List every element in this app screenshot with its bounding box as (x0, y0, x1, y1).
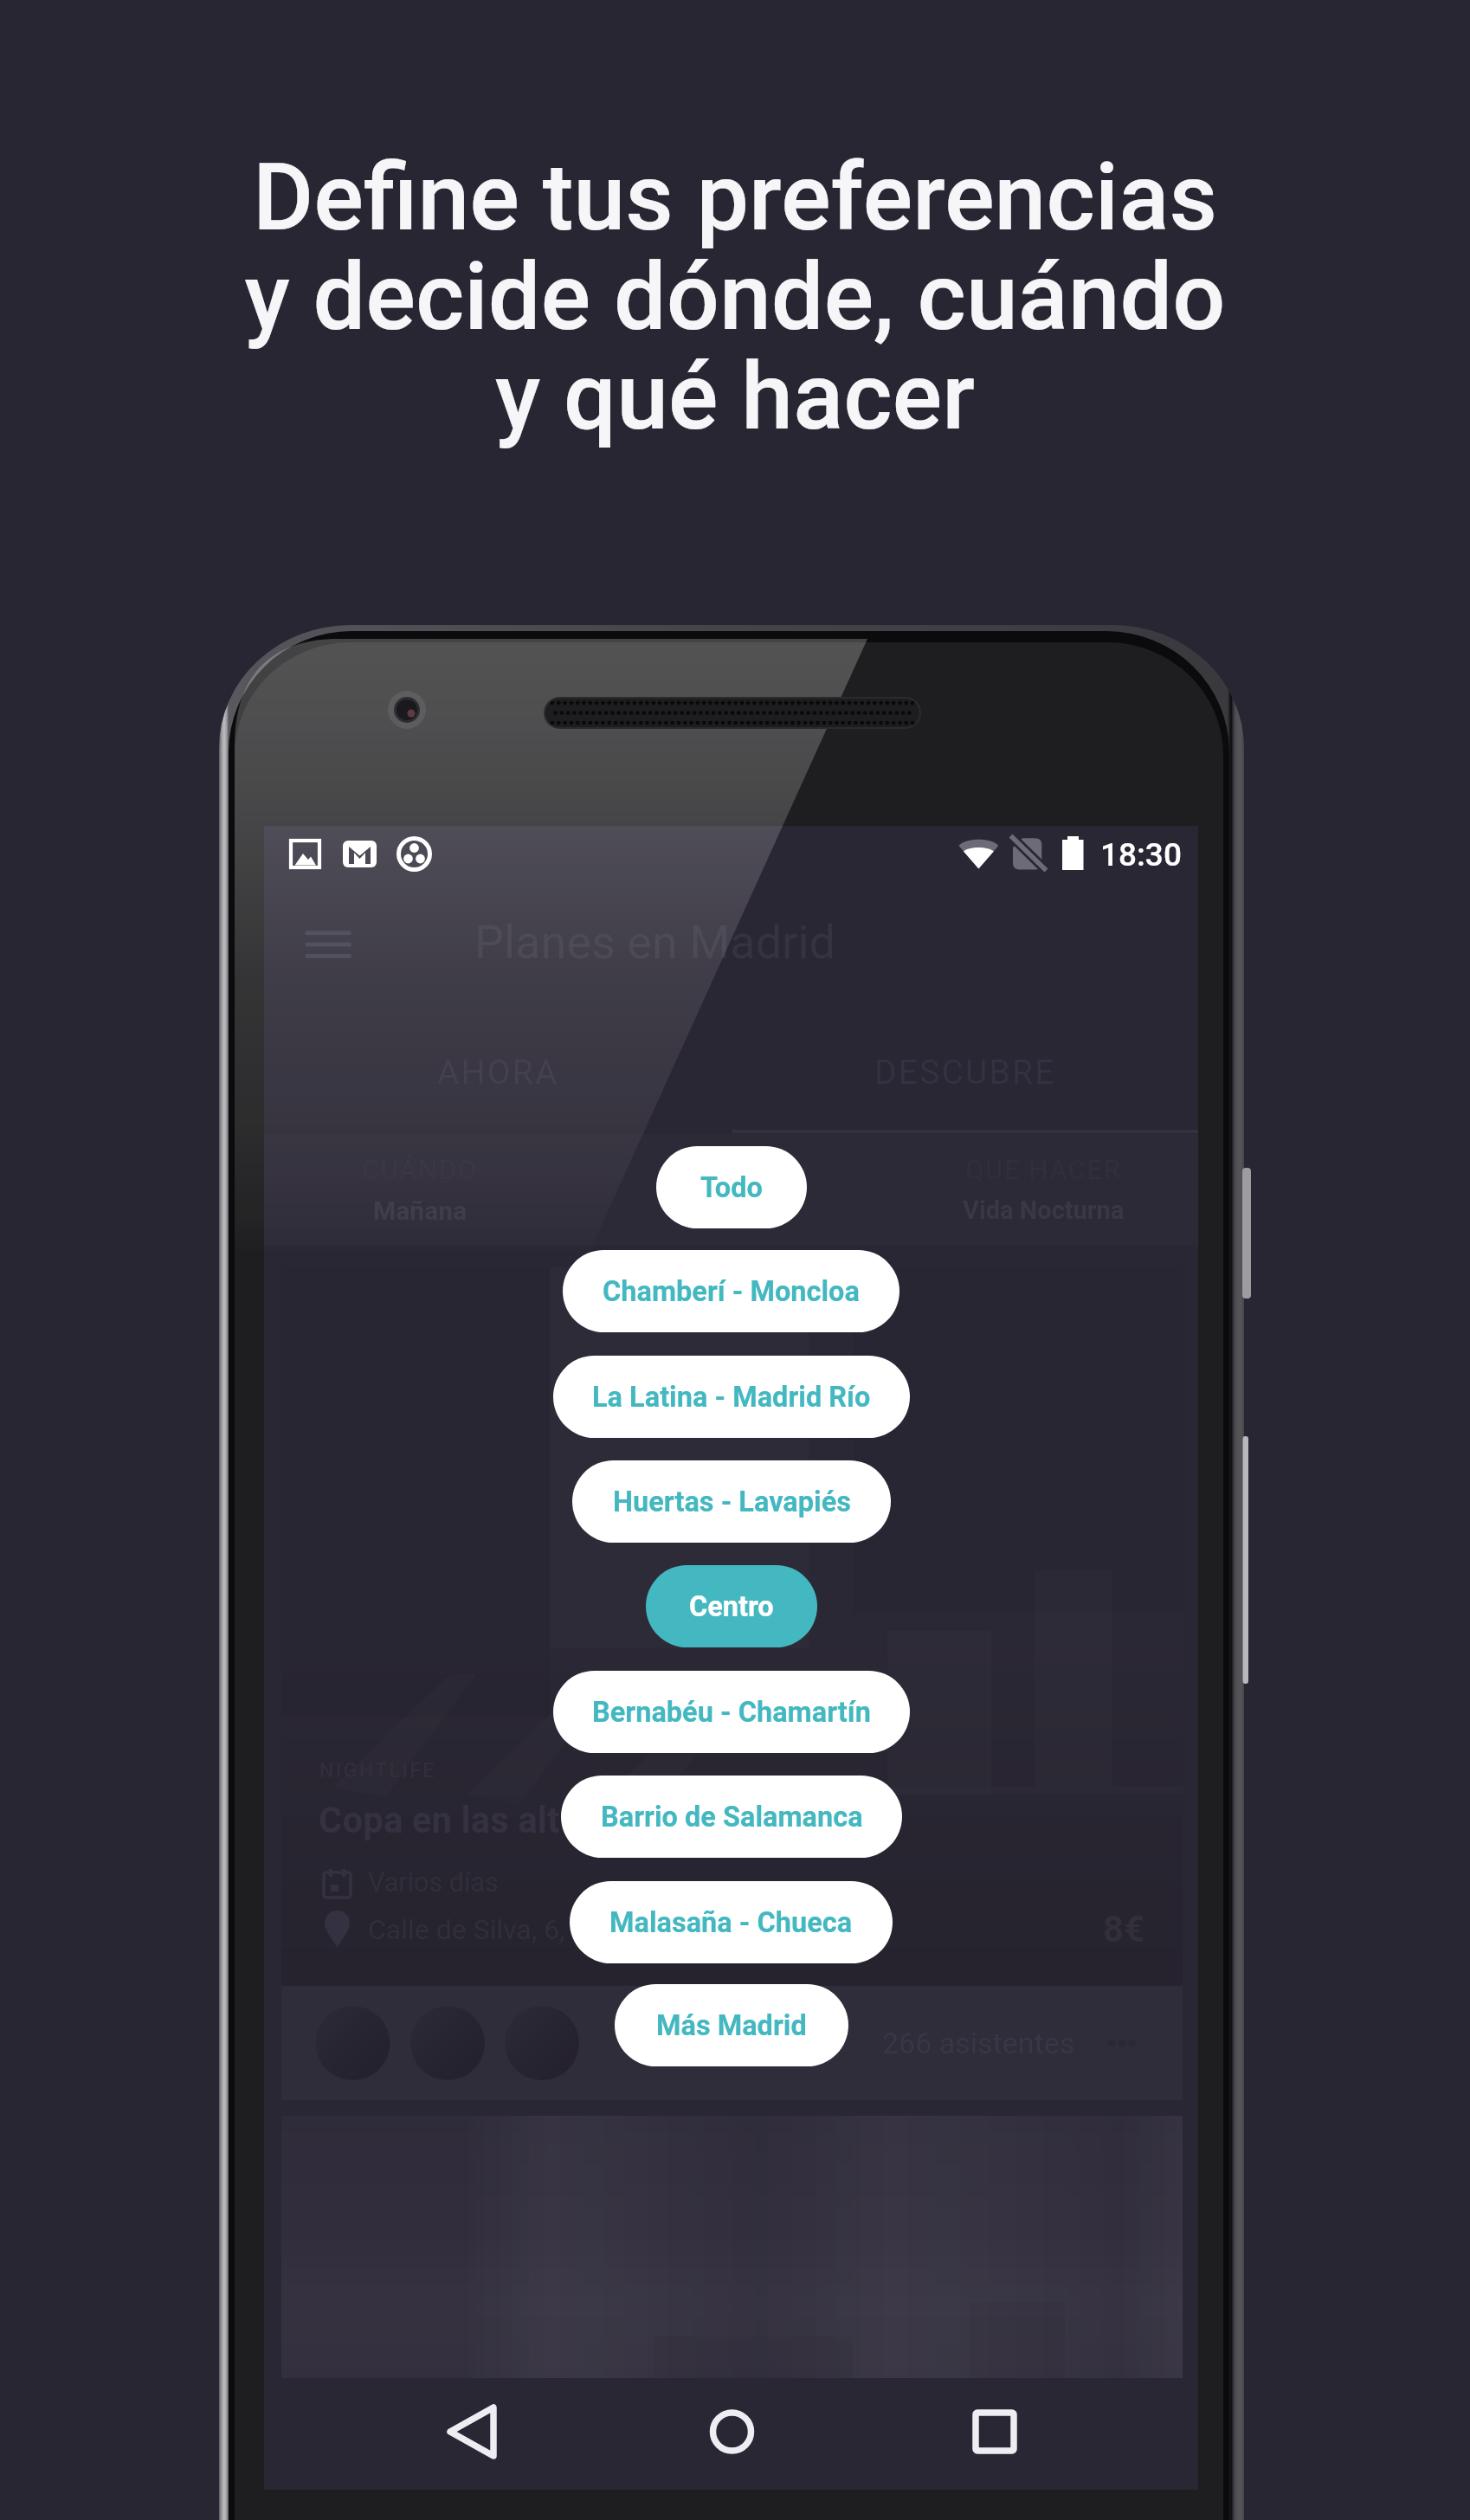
button[interactable]: Huertas - Lavapiés (572, 1460, 891, 1543)
staticText: Barrio de Salamanca (601, 1801, 863, 1834)
staticText: Copa en las alturas (319, 1799, 631, 1841)
button[interactable]: Back (409, 2379, 530, 2490)
staticText: Centro (689, 1590, 774, 1623)
button[interactable]: Centro (646, 1565, 817, 1647)
staticText: Vida Nocturna (963, 1196, 1125, 1225)
staticText: AHORA (437, 1053, 559, 1092)
button[interactable]: Recent apps (934, 2379, 1055, 2490)
staticText: DESCUBRE (874, 1053, 1056, 1092)
staticText: Bernabéu - Chamartín (592, 1696, 871, 1729)
button[interactable] (281, 1986, 1183, 2100)
button[interactable]: AHORA (264, 1012, 732, 1133)
button[interactable]: CUÁNDO (264, 1134, 576, 1245)
staticText: Define tus preferencias y decide dónde, … (0, 143, 1470, 451)
button[interactable]: Barrio de Salamanca (561, 1776, 902, 1858)
staticText: Malasaña - Chueca (609, 1906, 853, 1939)
button[interactable] (281, 1267, 1183, 1986)
staticText: Todo (700, 1171, 763, 1204)
button[interactable]: Malasaña - Chueca (570, 1881, 893, 1963)
staticText: 266 asistentes (882, 2026, 1075, 2060)
button[interactable]: Chamberí - Moncloa (563, 1250, 899, 1332)
staticText: 18:30 (1100, 836, 1182, 873)
staticText: Huertas - Lavapiés (613, 1486, 851, 1518)
button[interactable] (281, 2116, 1183, 2378)
button[interactable]: Más Madrid (615, 1984, 848, 2066)
staticText: Más Madrid (656, 2009, 807, 2042)
button[interactable]: Todo (656, 1146, 807, 1228)
staticText: La Latina - Madrid Río (592, 1381, 871, 1414)
staticText: 8€ (1103, 1908, 1145, 1950)
staticText: Planes en Madrid (474, 915, 835, 970)
button[interactable]: Home (671, 2379, 792, 2490)
staticText: Varios días (368, 1867, 499, 1898)
staticText: Calle de Silva, 6, Madrid (368, 1913, 659, 1946)
button[interactable]: Bernabéu - Chamartín (553, 1671, 910, 1753)
staticText: Mañana (373, 1196, 467, 1226)
button[interactable]: La Latina - Madrid Río (553, 1356, 910, 1438)
staticText: NIGHTLIFE (319, 1759, 436, 1782)
button[interactable]: Open navigation menu (288, 912, 371, 976)
staticText: Chamberí - Moncloa (603, 1275, 860, 1308)
